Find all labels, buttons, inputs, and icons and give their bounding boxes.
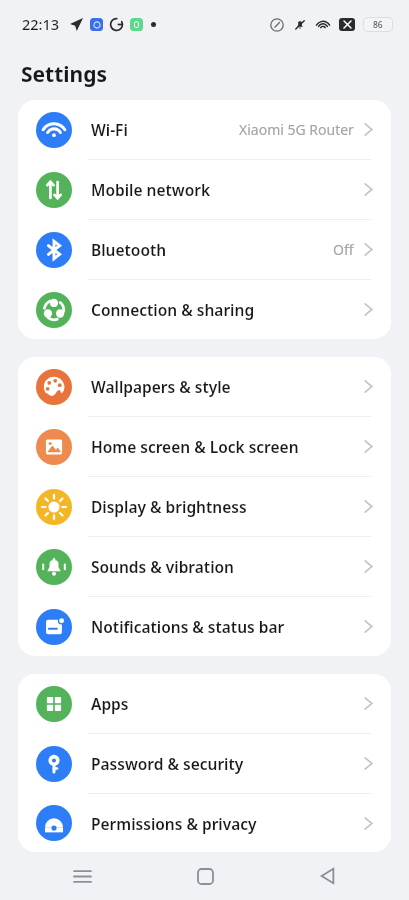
button[interactable]: Bluetooth <box>18 220 391 279</box>
staticText: Bluetooth <box>91 239 333 260</box>
staticText: Xiaomi 5G Router <box>239 120 354 139</box>
staticText: 22:13 <box>22 14 60 34</box>
button[interactable]: Sounds & vibration <box>18 537 391 596</box>
button[interactable]: Connection & sharing <box>18 280 391 339</box>
button[interactable]: Wi-Fi <box>18 100 391 159</box>
staticText: Home screen & Lock screen <box>91 436 364 457</box>
button[interactable]: Home screen & Lock screen <box>18 417 391 476</box>
staticText: 86 <box>373 19 383 31</box>
staticText: Wi-Fi <box>91 119 239 140</box>
button[interactable]: Apps <box>18 674 391 733</box>
button[interactable]: Mobile network <box>18 160 391 219</box>
staticText: Mobile network <box>91 179 364 200</box>
button[interactable]: Password & security <box>18 734 391 793</box>
button[interactable]: Display & brightness <box>18 477 391 536</box>
button[interactable]: Recent apps <box>62 856 102 896</box>
staticText: Display & brightness <box>91 496 364 517</box>
button[interactable]: Home <box>185 856 225 896</box>
staticText: Password & security <box>91 753 364 774</box>
staticText: Off <box>333 240 354 259</box>
button[interactable]: Wallpapers & style <box>18 357 391 416</box>
staticText: Permissions & privacy <box>91 813 364 834</box>
staticText: Apps <box>91 693 364 714</box>
staticText: Sounds & vibration <box>91 556 364 577</box>
button[interactable]: Permissions & privacy <box>18 794 391 852</box>
staticText: Wallpapers & style <box>91 376 364 397</box>
button[interactable]: Back <box>307 856 347 896</box>
button[interactable]: Notifications & status bar <box>18 597 391 656</box>
staticText: Notifications & status bar <box>91 616 364 637</box>
staticText: Connection & sharing <box>91 299 364 320</box>
staticText: Settings <box>21 60 108 89</box>
